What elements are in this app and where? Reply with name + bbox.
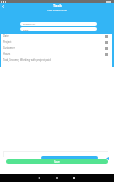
staticText: Project No. <box>23 22 36 25</box>
staticText: Date <box>3 34 9 37</box>
staticText: Date <box>23 28 29 31</box>
button[interactable]: Back <box>0 3 6 9</box>
button[interactable]: Next <box>105 156 110 161</box>
button[interactable]: Back <box>35 174 43 182</box>
staticText: Project <box>3 40 12 43</box>
button[interactable] <box>1 46 112 52</box>
button[interactable] <box>20 27 97 31</box>
button[interactable] <box>1 52 112 58</box>
button[interactable] <box>1 34 112 40</box>
staticText: Task, Income, Working with project paid <box>3 58 51 61</box>
button[interactable] <box>1 40 112 46</box>
button[interactable]: Save <box>6 159 108 164</box>
staticText: Customer <box>3 46 15 49</box>
button[interactable] <box>20 22 97 26</box>
button[interactable] <box>1 57 112 63</box>
button[interactable]: Recents <box>70 174 78 182</box>
button[interactable]: Add time <box>41 156 98 160</box>
staticText: Hours <box>3 52 11 55</box>
staticText: Save <box>54 160 60 164</box>
button[interactable]: Home <box>53 174 61 182</box>
staticText: New Project Time <box>47 8 67 11</box>
staticText: Task <box>53 3 62 8</box>
